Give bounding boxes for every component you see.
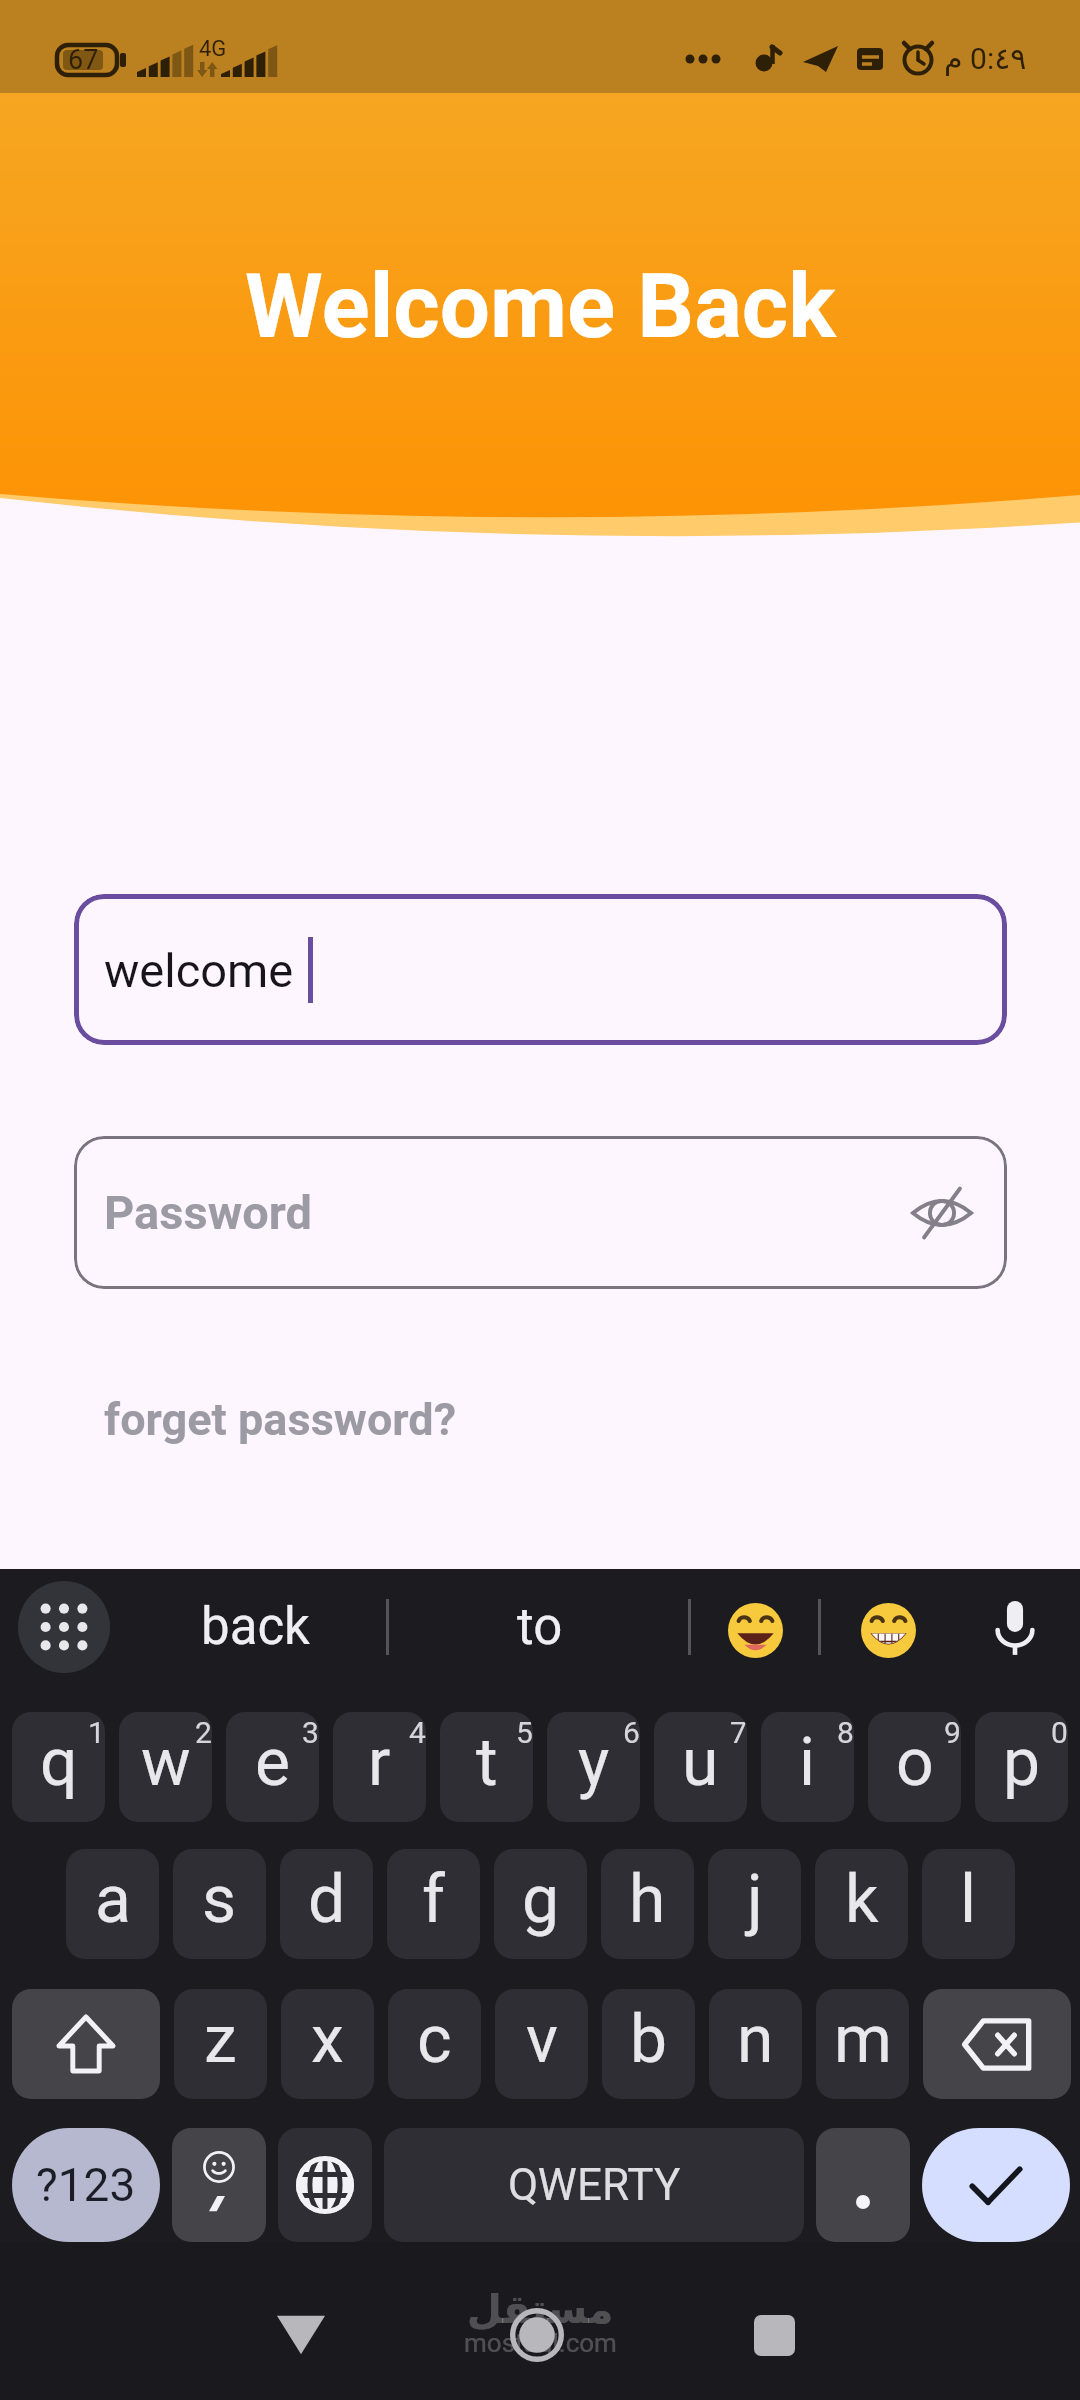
button[interactable]: s — [173, 1849, 266, 1959]
staticText: b — [630, 2001, 668, 2078]
button[interactable]: q — [12, 1712, 105, 1822]
button[interactable]: welcome — [74, 894, 1007, 1045]
staticText: forget password? — [104, 1393, 457, 1446]
button[interactable]: Backspace — [923, 1989, 1071, 2099]
staticText: back — [201, 1597, 310, 1657]
staticText: to — [517, 1597, 563, 1657]
staticText: 4G — [199, 36, 227, 62]
button[interactable]: Show password — [904, 1175, 980, 1251]
staticText: r — [368, 1724, 391, 1801]
staticText: l — [960, 1861, 977, 1938]
staticText: welcome — [104, 943, 294, 998]
button[interactable]: to — [395, 1572, 685, 1682]
staticText: x — [311, 2001, 344, 2078]
button[interactable]: t — [440, 1712, 533, 1822]
staticText: o — [896, 1724, 934, 1801]
button[interactable]: i — [761, 1712, 854, 1822]
staticText: q — [40, 1724, 78, 1801]
button[interactable]: Switch input method — [18, 1581, 110, 1673]
button[interactable]: z — [174, 1989, 267, 2099]
button[interactable]: b — [602, 1989, 695, 2099]
staticText: 0 — [1051, 1715, 1068, 1750]
button[interactable]: Voice input — [960, 1572, 1070, 1682]
button[interactable]: Shift — [12, 1989, 160, 2099]
staticText: م‎ 0:٤٩ — [944, 41, 1027, 76]
button[interactable]: c — [388, 1989, 481, 2099]
button[interactable]: ?123 — [12, 2128, 160, 2242]
button[interactable]: e — [226, 1712, 319, 1822]
staticText: m — [834, 2001, 892, 2078]
staticText: g — [522, 1861, 560, 1938]
staticText: d — [308, 1861, 346, 1938]
staticText: 4 — [409, 1715, 426, 1750]
staticText: a — [95, 1861, 131, 1938]
button[interactable]: a — [66, 1849, 159, 1959]
button[interactable]: x — [281, 1989, 374, 2099]
staticText: mostaql.com — [464, 2328, 617, 2358]
staticText: f — [422, 1861, 445, 1938]
button[interactable]: u — [654, 1712, 747, 1822]
button[interactable]: Recent apps — [714, 2275, 834, 2395]
staticText: 1 — [88, 1715, 105, 1750]
button[interactable]: Enter — [922, 2128, 1070, 2242]
button[interactable]: Laughing emoji — [700, 1572, 810, 1682]
staticText: w — [141, 1724, 191, 1801]
button[interactable]: Change keyboard language — [278, 2128, 372, 2242]
button[interactable]: Home — [477, 2275, 597, 2395]
staticText: y — [578, 1724, 610, 1801]
button[interactable]: g — [494, 1849, 587, 1959]
button[interactable]: v — [495, 1989, 588, 2099]
staticText: Welcome Back — [245, 254, 836, 358]
staticText: ?123 — [36, 2158, 136, 2212]
staticText: 9 — [944, 1715, 961, 1750]
staticText: 67 — [68, 44, 99, 76]
button[interactable]: Back — [241, 2275, 361, 2395]
button[interactable]: forget password? — [104, 1393, 457, 1446]
button[interactable]: QWERTY — [384, 2128, 804, 2242]
staticText: c — [417, 2001, 452, 2078]
staticText: e — [255, 1724, 290, 1801]
staticText: k — [845, 1861, 879, 1938]
button[interactable]: Grinning emoji — [833, 1572, 943, 1682]
staticText: 8 — [837, 1715, 854, 1750]
staticText: 5 — [516, 1715, 533, 1750]
staticText: t — [476, 1724, 498, 1801]
staticText: مستقل — [467, 2286, 614, 2333]
button[interactable]: n — [709, 1989, 802, 2099]
button[interactable]: y — [547, 1712, 640, 1822]
button[interactable]: f — [387, 1849, 480, 1959]
button[interactable]: p — [975, 1712, 1068, 1822]
button[interactable]: Emoji — [172, 2128, 266, 2242]
staticText: v — [526, 2001, 558, 2078]
button[interactable]: Password — [74, 1136, 1007, 1289]
button[interactable]: k — [815, 1849, 908, 1959]
staticText: p — [1003, 1724, 1041, 1801]
button[interactable]: r — [333, 1712, 426, 1822]
staticText: 3 — [302, 1715, 319, 1750]
button[interactable]: m — [816, 1989, 909, 2099]
button[interactable]: j — [708, 1849, 801, 1959]
staticText: s — [202, 1861, 237, 1938]
staticText: z — [204, 2001, 237, 2078]
staticText: QWERTY — [508, 2159, 681, 2211]
button[interactable]: d — [280, 1849, 373, 1959]
staticText: u — [682, 1724, 719, 1801]
staticText: Password — [104, 1185, 313, 1240]
staticText: h — [629, 1861, 666, 1938]
staticText: j — [747, 1861, 763, 1938]
button[interactable]: w — [119, 1712, 212, 1822]
staticText: 7 — [730, 1715, 747, 1750]
staticText: i — [799, 1724, 816, 1801]
button[interactable]: l — [922, 1849, 1015, 1959]
button[interactable]: back — [130, 1572, 380, 1682]
button[interactable]: Period — [816, 2128, 910, 2242]
staticText: 6 — [623, 1715, 640, 1750]
button[interactable]: o — [868, 1712, 961, 1822]
staticText: n — [737, 2001, 774, 2078]
staticText: 2 — [195, 1715, 212, 1750]
button[interactable]: h — [601, 1849, 694, 1959]
